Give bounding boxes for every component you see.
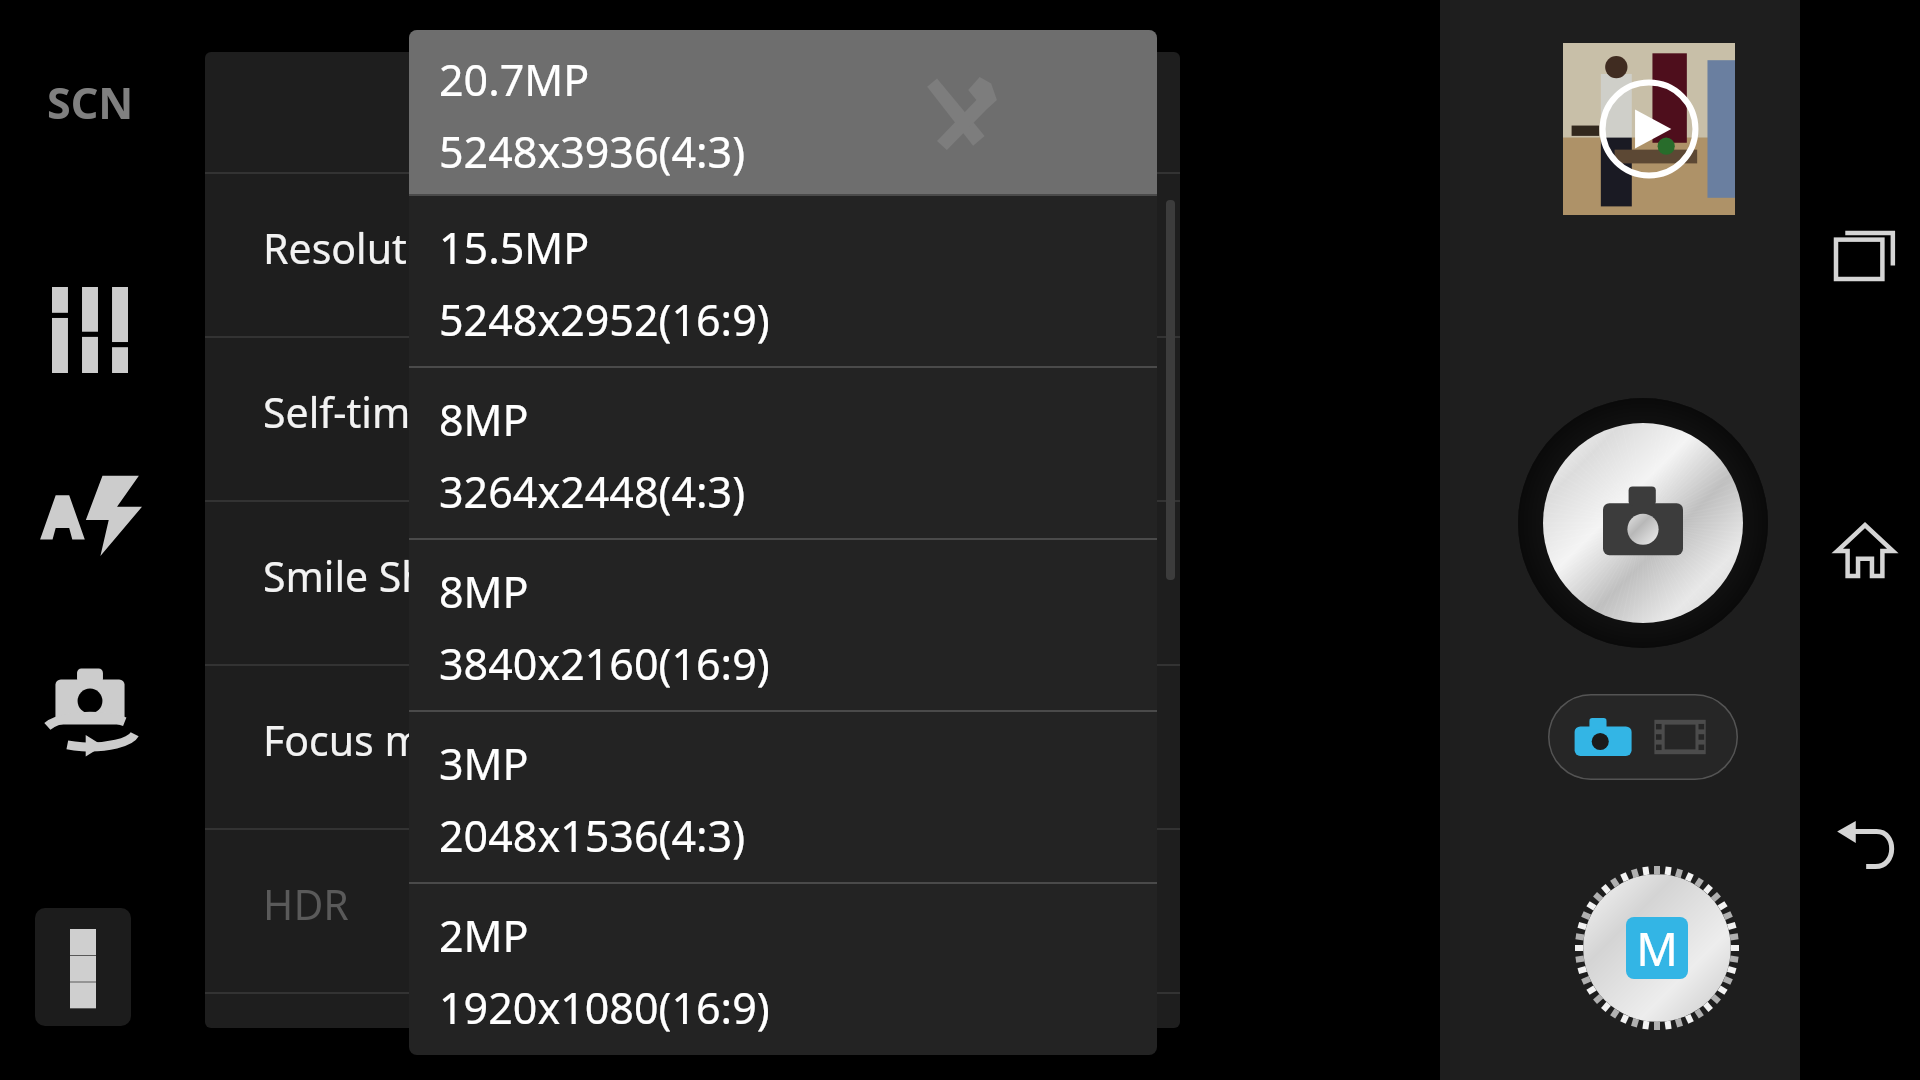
button[interactable]: 20.7MP [409, 30, 1157, 194]
staticText: 2048x1536(4:3) [439, 806, 746, 865]
staticText: 2MP [439, 906, 529, 965]
button[interactable]: Focus mode [205, 664, 1180, 828]
staticText: M [1636, 917, 1678, 979]
button[interactable] [965, 880, 1135, 942]
staticText: 3264x2448(4:3) [439, 462, 746, 521]
staticText: 20.7MP [439, 50, 590, 109]
button[interactable]: Back [1810, 790, 1920, 900]
staticText: 5248x2952(16:9) [439, 290, 770, 349]
button[interactable]: Smile Shutter [205, 500, 1180, 664]
staticText: 3840x2160(16:9) [439, 634, 770, 693]
button[interactable]: More options [35, 908, 131, 1026]
button[interactable]: 3MP [409, 710, 1157, 882]
button[interactable]: 2MP [409, 882, 1157, 1054]
button[interactable]: Self-timer [205, 336, 1180, 500]
staticText: 20.7MP [1007, 192, 1140, 244]
staticText: Smile Shutter [263, 548, 522, 604]
staticText: 15.5MP [439, 218, 590, 277]
button[interactable]: 15.5MP [409, 194, 1157, 366]
staticText: Focus mode [263, 712, 496, 768]
button[interactable]: Home [1810, 495, 1920, 605]
staticText: 1920x1080(16:9) [439, 978, 770, 1037]
button[interactable]: Photo video mode [1548, 694, 1738, 780]
staticText: 3MP [439, 734, 529, 793]
button[interactable]: Resolution [205, 172, 1180, 336]
button[interactable]: Flash auto [25, 455, 155, 575]
button[interactable]: Settings [30, 270, 150, 390]
button[interactable]: Switch camera [25, 650, 155, 770]
staticText: SCN [47, 73, 134, 132]
staticText: 8MP [439, 390, 529, 449]
button[interactable]: HDR [205, 828, 1180, 992]
button[interactable]: Recents [1810, 200, 1920, 310]
staticText: 8MP [439, 562, 529, 621]
staticText: Resolution [263, 220, 468, 276]
button[interactable]: SCN [10, 62, 170, 142]
button[interactable]: 8MP [409, 366, 1157, 538]
staticText: HDR [263, 876, 349, 932]
button[interactable]: Shutter [1518, 398, 1768, 648]
staticText: Self-timer [263, 384, 451, 440]
button[interactable]: Last capture [1563, 43, 1735, 215]
button[interactable]: Mode [1575, 866, 1739, 1030]
staticText: 5248x3936(4:3) [439, 122, 746, 181]
button[interactable]: 8MP [409, 538, 1157, 710]
